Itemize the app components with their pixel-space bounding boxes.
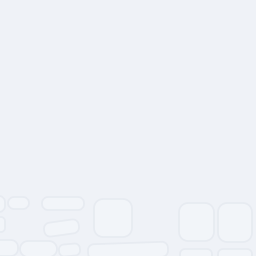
- button[interactable]: Tile 6: [44, 221, 79, 235]
- button[interactable]: Tile 13: [180, 249, 212, 256]
- button[interactable]: Tile 10: [20, 241, 57, 256]
- button[interactable]: Tile 14: [218, 249, 252, 256]
- button[interactable]: Tile 3: [8, 197, 29, 209]
- button[interactable]: Tile 2: [0, 217, 5, 232]
- button[interactable]: Tile 12: [88, 243, 168, 256]
- button[interactable]: Tile 8: [218, 203, 252, 242]
- button[interactable]: Tile 7: [179, 203, 214, 241]
- button[interactable]: Tile 1: [0, 196, 5, 212]
- button[interactable]: Tile 9: [0, 240, 18, 256]
- button[interactable]: Tile 5: [94, 199, 132, 237]
- button[interactable]: Tile 11: [59, 244, 80, 256]
- button[interactable]: Tile 4: [42, 197, 84, 210]
